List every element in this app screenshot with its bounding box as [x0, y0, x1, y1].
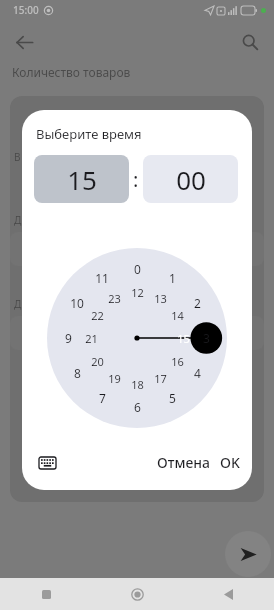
staticText: В [14, 150, 21, 164]
staticText: 1 [169, 270, 176, 286]
staticText: 8 [74, 365, 81, 381]
staticText: 11 [95, 270, 109, 286]
staticText: 9 [65, 330, 72, 346]
button[interactable]: Back [8, 26, 40, 58]
staticText: 23 [108, 291, 121, 306]
staticText: 22 [91, 308, 104, 323]
staticText: 4 [194, 365, 201, 381]
staticText: : [133, 166, 139, 193]
staticText: Количество товаров [12, 64, 131, 80]
staticText: 6 [134, 399, 141, 415]
staticText: 12 [131, 285, 144, 300]
staticText: 13 [154, 291, 167, 306]
staticText: 16 [171, 354, 184, 369]
staticText: 10 [70, 295, 84, 311]
button[interactable]: Send [225, 531, 271, 577]
staticText: 0 [134, 261, 141, 277]
staticText: 21 [85, 331, 98, 346]
staticText: Д [14, 297, 22, 311]
staticText: 5 [169, 390, 176, 406]
staticText: 7 [99, 390, 106, 406]
button[interactable]: OK [210, 445, 250, 480]
staticText: 15 [67, 162, 97, 197]
staticText: 15 [177, 331, 190, 346]
button[interactable]: 15 [34, 155, 129, 203]
staticText: 19 [108, 371, 121, 386]
staticText: 15:00 [13, 3, 39, 17]
button[interactable]: Switch to text input [32, 448, 62, 478]
staticText: 00 [176, 162, 206, 197]
staticText: OK [220, 453, 240, 472]
staticText: 2 [194, 295, 201, 311]
staticText: Отмена [157, 453, 211, 472]
button[interactable]: 0 [47, 248, 227, 428]
staticText: 18 [131, 377, 144, 392]
staticText: Д [14, 213, 22, 227]
button[interactable]: 00 [143, 155, 238, 203]
staticText: Выберите время [36, 125, 142, 143]
staticText: 14 [171, 308, 184, 323]
staticText: 17 [154, 371, 167, 386]
button[interactable]: Отмена [147, 445, 221, 480]
button[interactable]: Search [234, 26, 266, 58]
button[interactable]: Home [92, 578, 183, 610]
staticText: 3 [203, 330, 210, 346]
button[interactable]: Back [183, 578, 274, 610]
button[interactable]: Recents [0, 578, 92, 610]
staticText: 20 [91, 354, 104, 369]
